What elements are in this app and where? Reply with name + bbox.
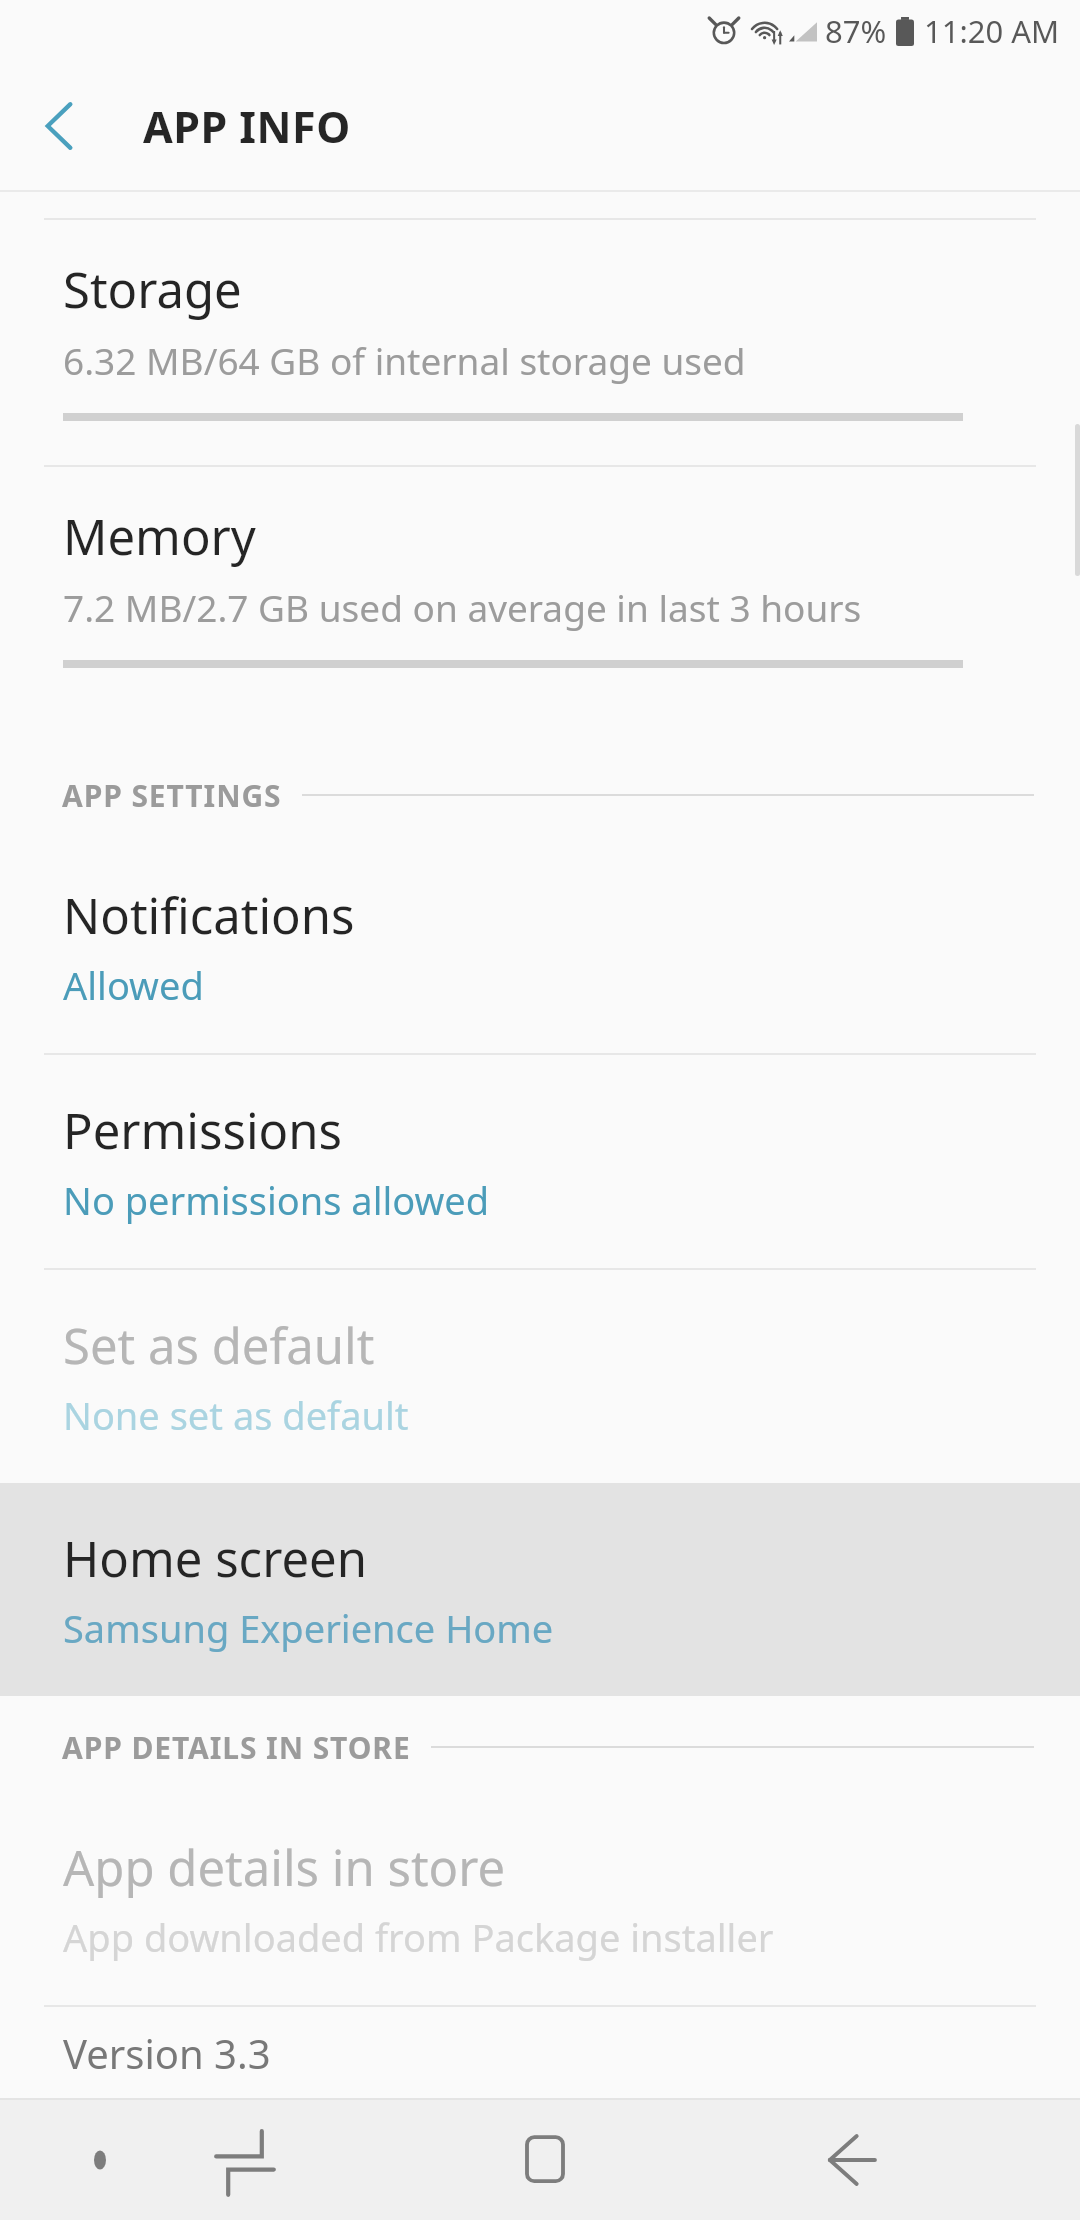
button[interactable]: App details in store xyxy=(0,1792,1080,2005)
button[interactable]: Storage xyxy=(0,220,1080,465)
staticText: Samsung Experience Home xyxy=(63,1602,554,1654)
staticText: APP DETAILS IN STORE xyxy=(62,1727,411,1768)
button[interactable]: Back xyxy=(790,2100,910,2220)
staticText: Allowed xyxy=(63,959,204,1011)
staticText: None set as default xyxy=(63,1389,409,1441)
button[interactable]: Keyboard indicator xyxy=(40,2100,160,2220)
button[interactable]: Version 3.3 xyxy=(0,2007,1080,2098)
staticText: Notifications xyxy=(63,882,355,949)
staticText: Memory xyxy=(63,503,256,570)
staticText: 7.2 MB/2.7 GB used on average in last 3 … xyxy=(63,582,862,632)
button[interactable]: Navigate up xyxy=(22,87,100,165)
staticText: Home screen xyxy=(63,1525,367,1592)
staticText: APP INFO xyxy=(143,97,351,156)
staticText: 87% xyxy=(825,10,887,52)
button[interactable]: Permissions xyxy=(0,1055,1080,1268)
button[interactable]: Set as default xyxy=(0,1270,1080,1483)
staticText: Version 3.3 xyxy=(63,2026,271,2080)
button[interactable]: Home xyxy=(485,2100,605,2220)
staticText: APP SETTINGS xyxy=(62,775,282,816)
staticText: App downloaded from Package installer xyxy=(63,1911,774,1963)
staticText: 11:20 AM xyxy=(924,10,1060,52)
button[interactable]: Home screen xyxy=(0,1483,1080,1696)
staticText: 6.32 MB/64 GB of internal storage used xyxy=(63,335,746,385)
button[interactable]: Memory xyxy=(0,467,1080,712)
staticText: Set as default xyxy=(63,1312,375,1379)
staticText: Storage xyxy=(63,256,242,323)
staticText: Permissions xyxy=(63,1097,342,1164)
button[interactable]: Recent apps xyxy=(185,2100,305,2220)
staticText: App details in store xyxy=(63,1834,506,1901)
button[interactable]: Notifications xyxy=(0,840,1080,1053)
staticText: No permissions allowed xyxy=(63,1174,490,1226)
